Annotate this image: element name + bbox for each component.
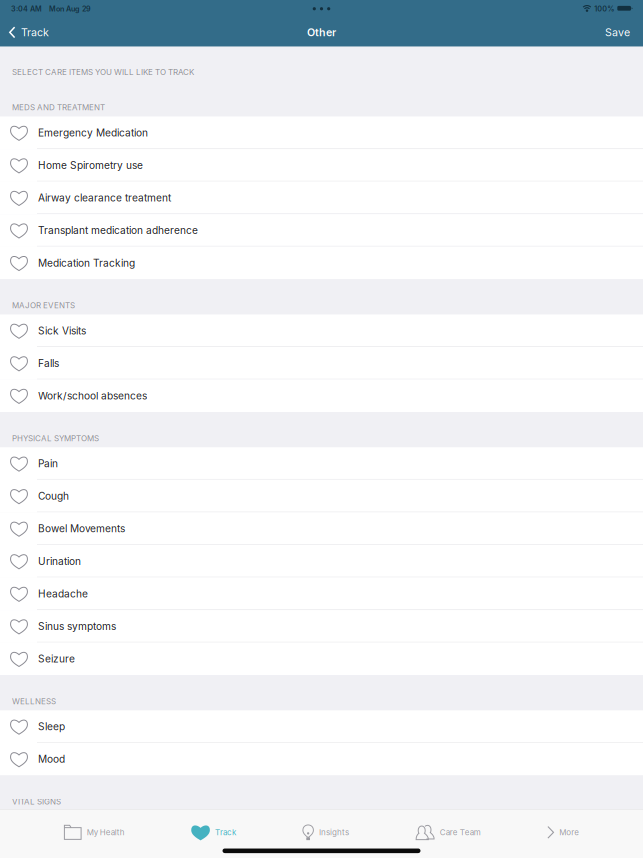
staticText: 3:04 AM: [11, 5, 42, 13]
button[interactable]: Sick Visits: [0, 314, 643, 347]
button[interactable]: Save: [605, 22, 643, 43]
button[interactable]: Blood Pressure: [0, 811, 643, 843]
staticText: Medication Tracking: [38, 257, 135, 269]
button[interactable]: Sinus symptoms: [0, 610, 643, 643]
staticText: Bowel Movements: [38, 522, 125, 535]
staticText: 100%: [594, 5, 614, 13]
staticText: Airway clearance treatment: [38, 192, 171, 204]
button[interactable]: Transplant medication adherence: [0, 214, 643, 247]
button[interactable]: Pain: [0, 447, 643, 480]
staticText: Sick Visits: [38, 325, 86, 337]
button[interactable]: Falls: [0, 347, 643, 379]
staticText: Home Spirometry use: [38, 159, 143, 171]
button[interactable]: Mood: [0, 743, 643, 775]
button[interactable]: Bowel Movements: [0, 512, 643, 545]
staticText: Blood Pressure: [38, 821, 110, 833]
staticText: Falls: [38, 357, 59, 369]
button[interactable]: Airway clearance treatment: [0, 182, 643, 214]
staticText: Insights: [319, 827, 349, 837]
staticText: Mood: [38, 753, 65, 765]
staticText: Emergency Medication: [38, 127, 148, 139]
button[interactable]: Seizure: [0, 643, 643, 675]
button[interactable]: Track: [0, 22, 49, 43]
staticText: Work/school absences: [38, 390, 147, 402]
staticText: WELLNESS: [12, 696, 56, 706]
button[interactable]: More: [547, 824, 579, 840]
button[interactable]: Track: [191, 824, 236, 840]
button[interactable]: Insights: [302, 824, 349, 840]
button[interactable]: Sleep: [0, 710, 643, 743]
staticText: Sinus symptoms: [38, 620, 116, 632]
button[interactable]: Headache: [0, 577, 643, 610]
staticText: PHYSICAL SYMPTOMS: [12, 433, 99, 443]
staticText: Transplant medication adherence: [38, 224, 198, 237]
staticText: Track: [21, 26, 49, 39]
button[interactable]: Emergency Medication: [0, 116, 643, 149]
button[interactable]: Work/school absences: [0, 380, 643, 412]
button[interactable]: Cough: [0, 480, 643, 512]
staticText: Mon Aug 29: [49, 5, 91, 13]
staticText: Pain: [38, 457, 58, 470]
staticText: MEDS AND TREATMENT: [12, 103, 105, 112]
staticText: My Health: [87, 827, 125, 837]
staticText: Sleep: [38, 720, 65, 733]
button[interactable]: Home Spirometry use: [0, 149, 643, 182]
staticText: SELECT CARE ITEMS YOU WILL LIKE TO TRACK: [12, 67, 194, 77]
button[interactable]: Urination: [0, 545, 643, 577]
button[interactable]: My Health: [64, 824, 125, 840]
staticText: Other: [307, 26, 336, 39]
staticText: Track: [215, 827, 236, 837]
button[interactable]: Care Team: [415, 824, 481, 840]
staticText: Cough: [38, 490, 69, 502]
staticText: Headache: [38, 588, 88, 600]
staticText: Urination: [38, 555, 81, 567]
staticText: More: [559, 827, 579, 837]
button[interactable]: Heart Rate: [0, 843, 643, 858]
staticText: VITAL SIGNS: [12, 797, 61, 806]
staticText: Save: [605, 26, 630, 39]
button[interactable]: Medication Tracking: [0, 247, 643, 279]
staticText: MAJOR EVENTS: [12, 301, 75, 310]
staticText: Care Team: [440, 827, 481, 837]
staticText: Seizure: [38, 653, 75, 665]
